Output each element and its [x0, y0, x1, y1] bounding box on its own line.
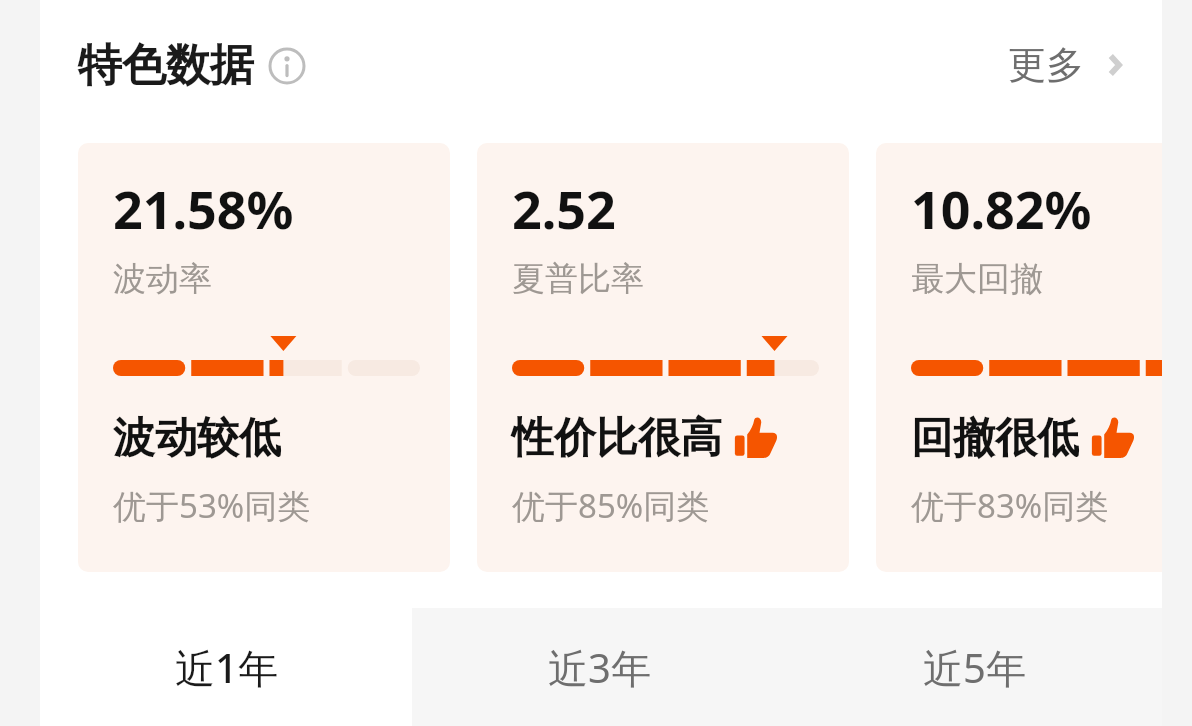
button[interactable]: 10.82%: [876, 143, 1192, 572]
staticText: 夏普比率: [512, 258, 644, 300]
staticText: 近5年: [923, 640, 1026, 695]
staticText: 波动较低: [113, 412, 281, 465]
staticText: 波动率: [113, 258, 212, 300]
staticText: 回撤很低: [911, 412, 1079, 465]
staticText: 优于83%同类: [911, 483, 1109, 528]
button[interactable]: 近3年: [412, 608, 787, 726]
staticText: 性价比很高: [512, 412, 722, 465]
staticText: 近3年: [548, 640, 651, 695]
button[interactable]: 近1年: [40, 608, 412, 726]
staticText: 近1年: [175, 640, 278, 695]
button[interactable]: 21.58%: [78, 143, 450, 572]
staticText: 优于53%同类: [113, 483, 311, 528]
staticText: 2.52: [512, 173, 616, 244]
staticText: 特色数据: [78, 38, 254, 93]
button[interactable]: 特色数据: [78, 38, 306, 93]
button[interactable]: 近5年: [787, 608, 1162, 726]
staticText: 21.58%: [113, 173, 294, 244]
button[interactable]: 2.52: [477, 143, 849, 572]
staticText: 10.82%: [911, 173, 1092, 244]
staticText: 更多: [1008, 41, 1084, 89]
other: Info: [268, 47, 306, 85]
staticText: 优于85%同类: [512, 483, 710, 528]
staticText: 最大回撤: [911, 258, 1043, 300]
button[interactable]: 更多: [1008, 41, 1130, 89]
